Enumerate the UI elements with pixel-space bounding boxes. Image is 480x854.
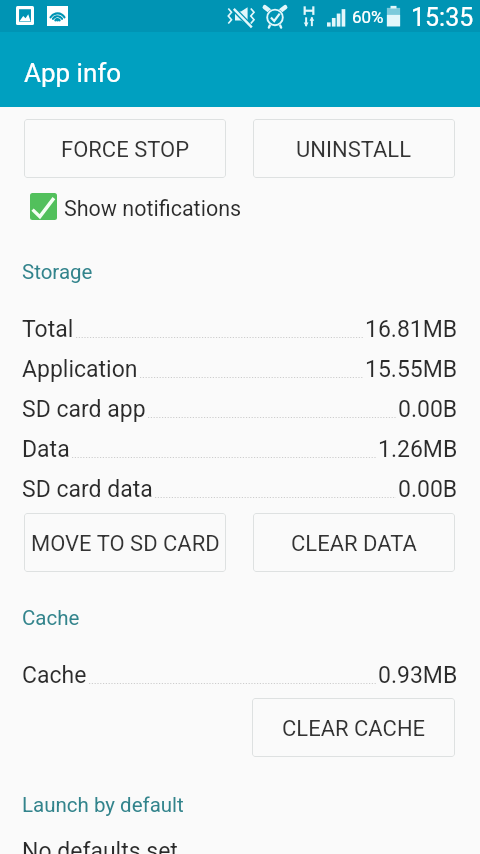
staticText: No defaults set (22, 838, 178, 854)
button[interactable]: Data (0, 432, 480, 466)
staticText: UNINSTALL (296, 137, 412, 163)
staticText: 15:35 (411, 3, 474, 32)
button[interactable]: UNINSTALL (253, 119, 455, 178)
staticText: Cache (22, 606, 80, 630)
staticText: 60% (352, 7, 384, 27)
button[interactable]: Show notifications (0, 189, 480, 223)
staticText: 16.81MB (365, 316, 458, 343)
staticText: Total (22, 316, 74, 343)
staticText: 15.55MB (365, 356, 458, 383)
staticText: Launch by default (22, 793, 184, 817)
staticText: CLEAR CACHE (282, 716, 426, 742)
staticText: App info (24, 58, 122, 88)
staticText: Application (22, 356, 138, 383)
button[interactable]: Application (0, 352, 480, 386)
staticText: SD card app (22, 396, 146, 423)
staticText: Show notifications (64, 196, 242, 221)
staticText: SD card data (22, 476, 153, 503)
staticText: Storage (22, 260, 93, 284)
staticText: 0.00B (398, 396, 458, 423)
button[interactable]: CLEAR CACHE (252, 698, 455, 757)
staticText: 0.93MB (378, 662, 458, 689)
button[interactable]: SD card app (0, 392, 480, 426)
staticText: FORCE STOP (61, 137, 190, 163)
button[interactable]: FORCE STOP (24, 119, 226, 178)
staticText: CLEAR DATA (291, 531, 417, 557)
button[interactable]: SD card data (0, 472, 480, 506)
staticText: Cache (22, 662, 87, 689)
staticText: 0.00B (398, 476, 458, 503)
staticText: Data (22, 436, 70, 463)
button[interactable]: Cache (0, 658, 480, 692)
button[interactable]: Total (0, 312, 480, 346)
button[interactable]: MOVE TO SD CARD (24, 513, 226, 572)
staticText: 1.26MB (378, 436, 458, 463)
staticText: MOVE TO SD CARD (31, 531, 220, 557)
button[interactable]: CLEAR DATA (253, 513, 455, 572)
